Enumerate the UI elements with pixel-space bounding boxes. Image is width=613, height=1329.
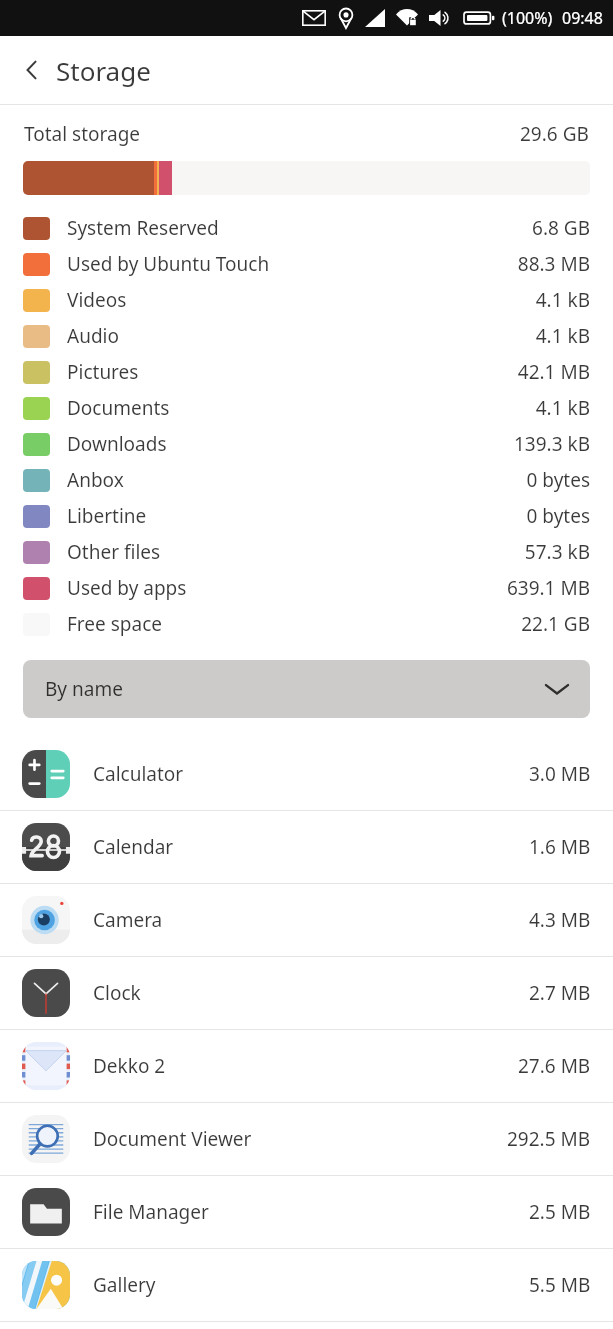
staticText: Libertine [67,503,147,529]
staticText: 0 bytes [526,467,590,493]
button[interactable]: Pictures [0,354,613,390]
button[interactable]: Free space [0,606,613,642]
button[interactable]: Dekko 2 [0,1030,613,1102]
staticText: (100%) [502,7,553,29]
staticText: Storage [56,53,151,88]
staticText: Anbox [67,467,124,493]
staticText: 4.3 MB [529,907,591,933]
staticText: 27.6 MB [518,1053,591,1079]
staticText: Documents [67,395,170,421]
button[interactable]: Camera [0,884,613,956]
staticText: 4.1 kB [535,287,590,313]
staticText: By name [45,676,123,702]
button[interactable]: Documents [0,390,613,426]
staticText: 29.6 GB [520,121,589,147]
button[interactable]: By name [23,660,590,718]
staticText: 22.1 GB [521,611,590,637]
button[interactable]: Clock [0,957,613,1029]
staticText: Document Viewer [93,1126,252,1152]
button[interactable]: Anbox [0,462,613,498]
staticText: 09:48 [562,7,603,29]
staticText: 139.3 kB [513,431,590,457]
staticText: System Reserved [67,215,219,241]
staticText: Total storage [24,121,141,147]
staticText: Gallery [93,1272,156,1298]
staticText: Used by apps [67,575,187,601]
staticText: 42.1 MB [517,359,590,385]
button[interactable]: Downloads [0,426,613,462]
staticText: 4.1 kB [535,323,590,349]
staticText: 6.8 GB [532,215,590,241]
staticText: 292.5 MB [507,1126,591,1152]
staticText: 0 bytes [526,503,590,529]
button[interactable]: Used by Ubuntu Touch [0,246,613,282]
staticText: 1.6 MB [529,834,591,860]
staticText: 88.3 MB [517,251,590,277]
button[interactable]: Libertine [0,498,613,534]
staticText: 3.0 MB [529,761,591,787]
staticText: Calculator [93,761,184,787]
staticText: 57.3 kB [524,539,590,565]
staticText: Videos [67,287,127,313]
staticText: Clock [93,980,141,1006]
staticText: Dekko 2 [93,1053,166,1079]
staticText: 639.1 MB [506,575,590,601]
staticText: Downloads [67,431,167,457]
staticText: Free space [67,611,162,637]
staticText: Used by Ubuntu Touch [67,251,270,277]
button[interactable]: Videos [0,282,613,318]
staticText: Camera [93,907,163,933]
staticText: 2.7 MB [529,980,591,1006]
button[interactable]: Back [0,36,613,104]
staticText: 4.1 kB [535,395,590,421]
button[interactable]: File Manager [0,1176,613,1248]
button[interactable]: System Reserved [0,210,613,246]
button[interactable]: Calculator [0,738,613,810]
staticText: 2.5 MB [529,1199,591,1225]
staticText: 5.5 MB [529,1272,591,1298]
staticText: Calendar [93,834,174,860]
button[interactable]: Document Viewer [0,1103,613,1175]
button[interactable]: Calendar [0,811,613,883]
staticText: File Manager [93,1199,209,1225]
button[interactable]: Other files [0,534,613,570]
staticText: Audio [67,323,119,349]
staticText: Other files [67,539,161,565]
button[interactable]: Audio [0,318,613,354]
staticText: Pictures [67,359,139,385]
button[interactable]: Used by apps [0,570,613,606]
other: Back [24,57,40,83]
button[interactable]: Gallery [0,1249,613,1321]
